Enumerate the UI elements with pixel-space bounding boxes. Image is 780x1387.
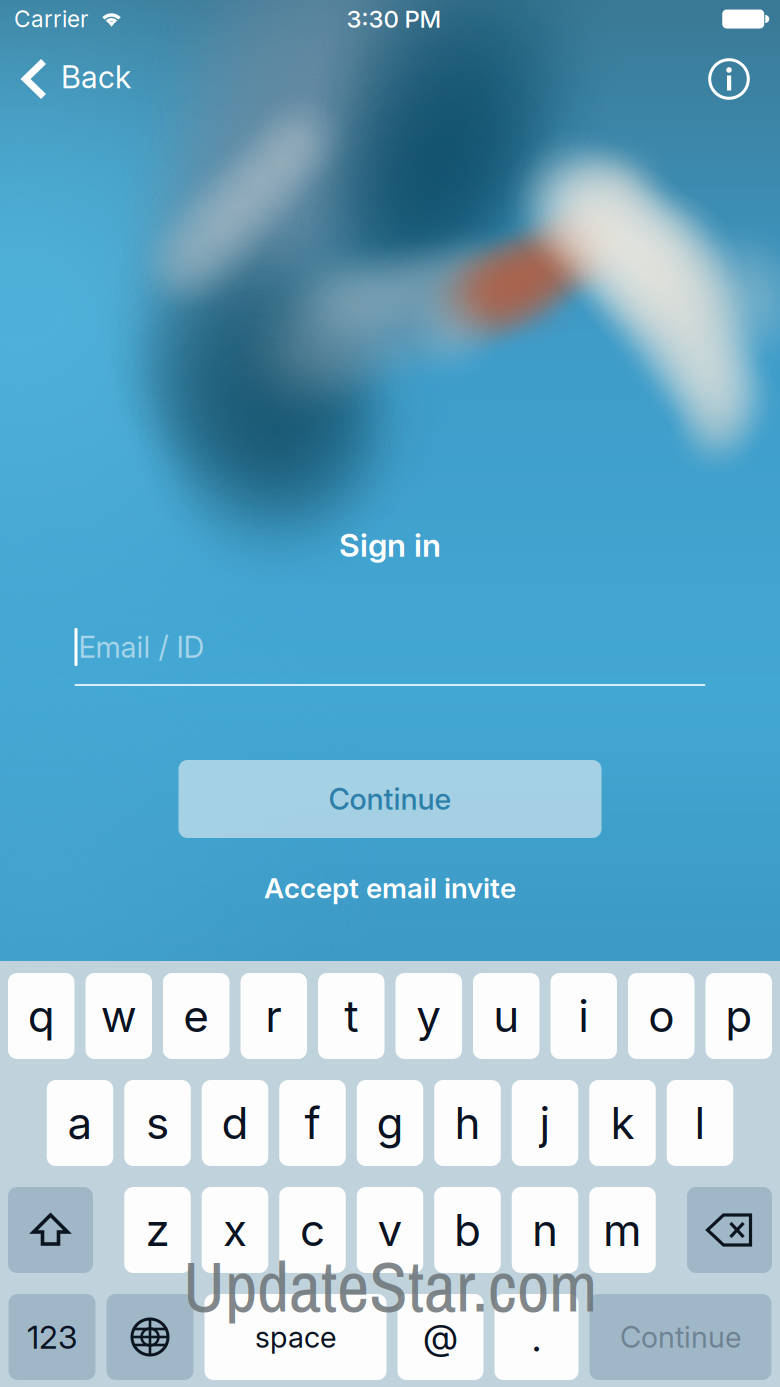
button[interactable]: space [204, 1294, 386, 1380]
staticText: o [648, 989, 674, 1043]
button[interactable]: e [163, 973, 229, 1059]
staticText: Continue [328, 781, 451, 817]
button[interactable]: l [667, 1080, 733, 1166]
staticText: Continue [620, 1319, 741, 1355]
button[interactable]: y [395, 973, 462, 1059]
staticText: a [67, 1096, 92, 1150]
staticText: i [578, 989, 589, 1043]
button[interactable]: q [8, 973, 74, 1059]
staticText: h [454, 1096, 480, 1150]
button[interactable]: g [357, 1080, 423, 1166]
button[interactable]: w [85, 973, 152, 1059]
staticText: @ [423, 1315, 458, 1359]
staticText: Email / ID [78, 629, 204, 665]
button[interactable]: k [589, 1080, 656, 1166]
staticText: g [376, 1096, 403, 1150]
staticText: t [344, 989, 358, 1043]
staticText: k [610, 1096, 634, 1150]
button[interactable]: t [318, 973, 384, 1059]
button[interactable]: Delete [687, 1187, 772, 1273]
button[interactable]: d [202, 1080, 268, 1166]
staticText: v [377, 1203, 402, 1257]
button[interactable]: . [494, 1294, 578, 1380]
staticText: p [725, 989, 752, 1043]
staticText: q [28, 989, 55, 1043]
staticText: Carrier [14, 5, 88, 33]
button[interactable]: z [124, 1187, 191, 1273]
button[interactable]: v [357, 1187, 423, 1273]
staticText: w [101, 989, 137, 1043]
staticText: Sign in [339, 526, 441, 564]
button[interactable]: i [550, 973, 617, 1059]
button[interactable]: 123 [8, 1294, 95, 1380]
staticText: Back [61, 58, 131, 95]
staticText: l [694, 1096, 705, 1150]
button[interactable]: Shift [8, 1187, 93, 1273]
button[interactable]: Accept email invite [250, 865, 530, 911]
button[interactable]: h [434, 1080, 501, 1166]
staticText: e [183, 989, 209, 1043]
staticText: s [146, 1096, 169, 1150]
button[interactable]: n [512, 1187, 578, 1273]
button[interactable]: j [512, 1080, 578, 1166]
staticText: r [265, 989, 282, 1043]
button[interactable]: Continue [589, 1294, 771, 1380]
button[interactable]: Information [693, 47, 765, 111]
button[interactable]: @ [397, 1294, 483, 1380]
button[interactable]: Continue [178, 760, 601, 838]
staticText: c [300, 1203, 325, 1257]
button[interactable]: Next keyboard [106, 1294, 193, 1380]
staticText: UpdateStar.com [183, 1238, 597, 1334]
button[interactable]: a [47, 1080, 113, 1166]
staticText: u [493, 989, 519, 1043]
staticText: z [145, 1203, 169, 1257]
button[interactable]: Back [0, 47, 145, 111]
button[interactable]: c [279, 1187, 346, 1273]
staticText: space [255, 1319, 336, 1355]
button[interactable]: u [473, 973, 539, 1059]
button[interactable]: m [589, 1187, 656, 1273]
staticText: Accept email invite [264, 871, 516, 905]
button[interactable]: b [434, 1187, 501, 1273]
staticText: y [416, 989, 441, 1043]
staticText: n [532, 1203, 558, 1257]
staticText: 3:30 PM [346, 4, 441, 33]
button[interactable]: p [705, 973, 772, 1059]
button[interactable]: r [240, 973, 307, 1059]
button[interactable]: x [202, 1187, 268, 1273]
staticText: 123 [27, 1318, 77, 1356]
staticText: x [223, 1203, 247, 1257]
staticText: d [221, 1096, 248, 1150]
staticText: b [454, 1203, 481, 1257]
staticText: . [532, 1313, 541, 1361]
button[interactable]: o [628, 973, 694, 1059]
button[interactable]: f [279, 1080, 346, 1166]
staticText: j [539, 1096, 550, 1150]
staticText: m [603, 1203, 642, 1257]
button[interactable]: s [124, 1080, 191, 1166]
staticText: f [304, 1096, 320, 1150]
